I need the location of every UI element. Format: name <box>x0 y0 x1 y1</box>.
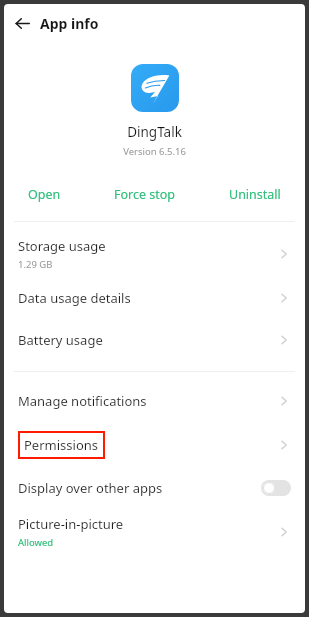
button[interactable]: Display over other apps toggle <box>261 480 291 496</box>
staticText: Uninstall <box>229 186 281 203</box>
button[interactable]: Back <box>4 5 40 41</box>
staticText: Storage usage <box>18 237 106 255</box>
button[interactable]: Uninstall <box>219 182 291 207</box>
button[interactable]: Force stop <box>104 182 186 207</box>
staticText: App info <box>40 14 99 33</box>
button[interactable]: Picture-in-picture <box>4 509 305 555</box>
staticText: Permissions <box>24 436 99 454</box>
staticText: DingTalk <box>127 123 182 141</box>
button[interactable]: Storage usage <box>4 231 305 277</box>
staticText: Open <box>28 186 61 203</box>
staticText: 1.29 GB <box>18 258 53 271</box>
button[interactable]: Data usage details <box>4 277 305 319</box>
staticText: Version 6.5.16 <box>123 145 186 158</box>
staticText: Display over other apps <box>18 479 163 497</box>
button[interactable]: Manage notifications <box>4 380 305 422</box>
button[interactable]: Battery usage <box>4 319 305 361</box>
staticText: Battery usage <box>18 331 103 349</box>
button[interactable]: Display over other apps <box>4 467 305 509</box>
staticText: Picture-in-picture <box>18 515 124 533</box>
staticText: Allowed <box>18 536 54 549</box>
button[interactable]: Permissions <box>4 422 305 467</box>
staticText: Manage notifications <box>18 392 147 410</box>
staticText: Force stop <box>114 186 176 203</box>
staticText: Data usage details <box>18 289 131 307</box>
button[interactable]: Open <box>18 182 71 207</box>
